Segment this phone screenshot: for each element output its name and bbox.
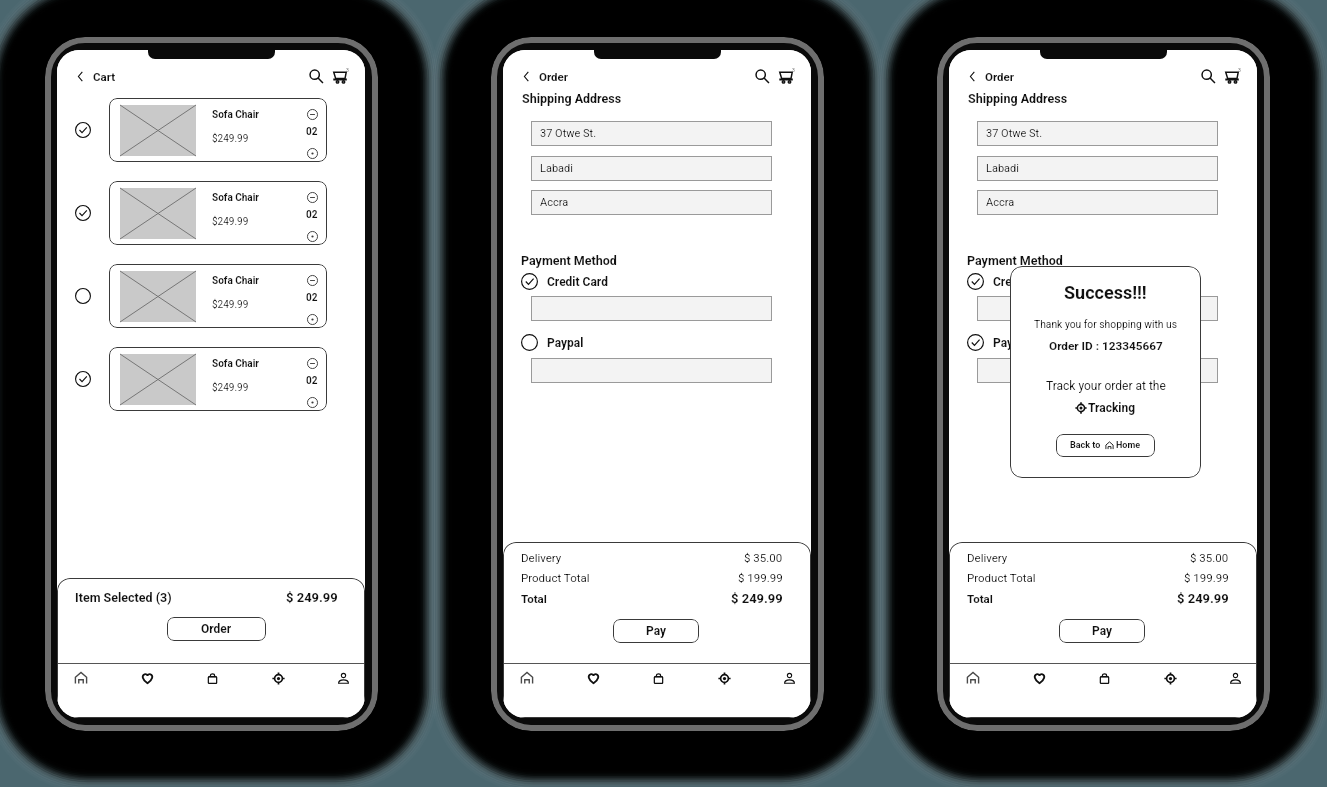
staticText: Labadi xyxy=(986,162,1019,175)
button[interactable]: Bag xyxy=(201,667,223,689)
staticText: Order xyxy=(539,70,568,83)
button[interactable]: Decrease quantity xyxy=(307,192,318,203)
other: Decrease quantity xyxy=(307,275,318,286)
button[interactable]: Home xyxy=(516,667,538,689)
button[interactable]: Bag xyxy=(647,667,669,689)
staticText: $ 249.99 xyxy=(731,591,783,606)
button[interactable]: Sofa Chair xyxy=(109,347,327,411)
button[interactable]: Paypal xyxy=(521,334,584,351)
staticText: Total xyxy=(521,592,547,605)
button[interactable]: Increase quantity xyxy=(307,397,318,408)
other: Increase quantity xyxy=(307,314,318,325)
staticText: Payment Method xyxy=(967,253,1063,268)
button[interactable]: Paypal xyxy=(967,334,1030,351)
button[interactable]: Favourites xyxy=(582,667,604,689)
button[interactable]: Decrease quantity xyxy=(307,109,318,120)
staticText: $ 35.00 xyxy=(744,551,783,564)
other: Decrease quantity xyxy=(307,109,318,120)
button[interactable]: Profile xyxy=(778,667,800,689)
button[interactable]: Home xyxy=(70,667,92,689)
button[interactable]: Profile xyxy=(1224,667,1246,689)
button[interactable]: Tracking xyxy=(1075,401,1136,415)
button[interactable]: Pay xyxy=(613,619,699,643)
other: Search xyxy=(755,69,770,84)
button[interactable]: Search xyxy=(309,69,324,84)
staticText: $ 249.99 xyxy=(286,590,338,605)
other: Decrease quantity xyxy=(307,192,318,203)
other: Search xyxy=(309,69,324,84)
button[interactable]: Profile xyxy=(332,667,354,689)
staticText: Product Total xyxy=(521,571,590,584)
staticText: $249.99 xyxy=(212,133,249,145)
button[interactable]: Select item xyxy=(75,371,91,387)
staticText: Success!!! xyxy=(1064,282,1147,303)
button[interactable]: Cart xyxy=(333,69,348,84)
staticText: Sofa Chair xyxy=(212,275,260,287)
staticText: Accra xyxy=(540,196,569,209)
button[interactable]: Credit Card xyxy=(967,273,1054,290)
other: Increase quantity xyxy=(307,231,318,242)
button[interactable]: Search xyxy=(1201,69,1216,84)
button[interactable]: Search xyxy=(755,69,770,84)
staticText: Order xyxy=(985,70,1014,83)
button[interactable]: Order xyxy=(167,617,266,641)
staticText: $ 199.99 xyxy=(738,571,783,584)
staticText: Order ID : 123345667 xyxy=(1049,339,1163,353)
staticText: $249.99 xyxy=(212,299,249,311)
staticText: Pay xyxy=(1092,624,1113,638)
staticText: Labadi xyxy=(540,162,573,175)
staticText: Thank you for shopping with us xyxy=(1034,318,1178,330)
button[interactable]: Favourites xyxy=(136,667,158,689)
button[interactable]: Increase quantity xyxy=(307,148,318,159)
button[interactable]: Increase quantity xyxy=(307,231,318,242)
staticText: Pay xyxy=(646,624,667,638)
staticText: Paypal xyxy=(993,336,1030,350)
staticText: Accra xyxy=(986,196,1015,209)
button[interactable]: Back xyxy=(74,70,120,83)
staticText: 02 xyxy=(306,126,318,138)
button[interactable]: Back xyxy=(966,70,1018,83)
staticText: 37 Otwe St. xyxy=(986,127,1043,140)
button[interactable]: Select item xyxy=(75,122,91,138)
button[interactable]: Sofa Chair xyxy=(109,98,327,162)
button[interactable]: Sofa Chair xyxy=(109,264,327,328)
staticText: Tracking xyxy=(1088,401,1136,415)
button[interactable]: Select item xyxy=(75,205,91,221)
button[interactable]: Favourites xyxy=(1028,667,1050,689)
button[interactable]: Home xyxy=(962,667,984,689)
staticText: Home xyxy=(1116,440,1141,451)
staticText: 3 xyxy=(792,67,795,73)
button[interactable]: Cart xyxy=(779,69,794,84)
staticText: 37 Otwe St. xyxy=(540,127,597,140)
staticText: Credit Card xyxy=(547,275,608,289)
staticText: $ 249.99 xyxy=(1177,591,1229,606)
staticText: Total xyxy=(967,592,993,605)
button[interactable]: Pay xyxy=(1059,619,1145,643)
button[interactable]: Tracking xyxy=(1159,667,1181,689)
button[interactable]: Back to xyxy=(1056,434,1155,457)
button[interactable]: Decrease quantity xyxy=(307,275,318,286)
button[interactable]: Back xyxy=(520,70,572,83)
button[interactable]: Increase quantity xyxy=(307,314,318,325)
staticText: Shipping Address xyxy=(522,91,622,106)
staticText: Shipping Address xyxy=(968,91,1068,106)
button[interactable]: Decrease quantity xyxy=(307,358,318,369)
button[interactable]: Bag xyxy=(1093,667,1115,689)
button[interactable]: Tracking xyxy=(267,667,289,689)
button[interactable]: Cart xyxy=(1225,69,1240,84)
staticText: Track your order at the xyxy=(1046,379,1166,393)
staticText: 3 xyxy=(1238,67,1241,73)
button[interactable]: Credit Card xyxy=(521,273,608,290)
staticText: Paypal xyxy=(547,336,584,350)
staticText: Payment Method xyxy=(521,253,617,268)
staticText: Sofa Chair xyxy=(212,192,260,204)
button[interactable]: Sofa Chair xyxy=(109,181,327,245)
staticText: $ 35.00 xyxy=(1190,551,1229,564)
staticText: Order xyxy=(201,622,232,636)
button[interactable]: Tracking xyxy=(713,667,735,689)
button[interactable]: Select item xyxy=(75,288,91,304)
other: Decrease quantity xyxy=(307,358,318,369)
other: Search xyxy=(1201,69,1216,84)
staticText: 3 xyxy=(346,67,349,73)
staticText: $249.99 xyxy=(212,216,249,228)
